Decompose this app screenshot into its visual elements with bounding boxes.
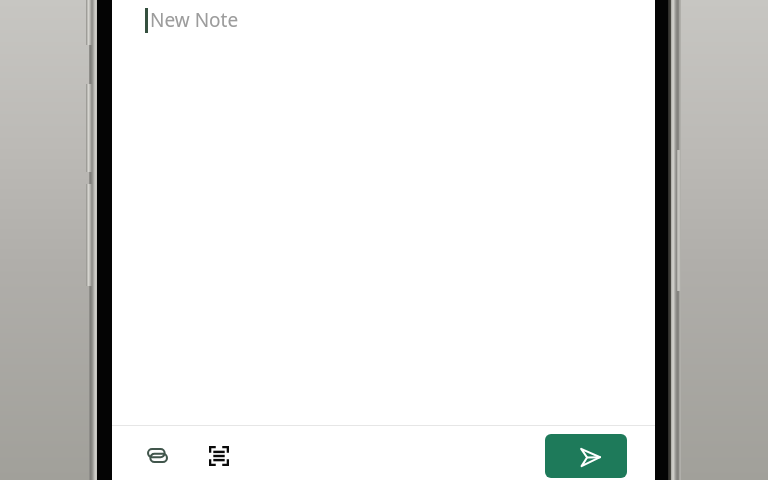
button[interactable]: Scan document <box>199 436 239 476</box>
button[interactable]: Send <box>545 434 627 478</box>
staticText: New Note <box>150 7 239 33</box>
button[interactable]: Add link <box>137 435 177 475</box>
